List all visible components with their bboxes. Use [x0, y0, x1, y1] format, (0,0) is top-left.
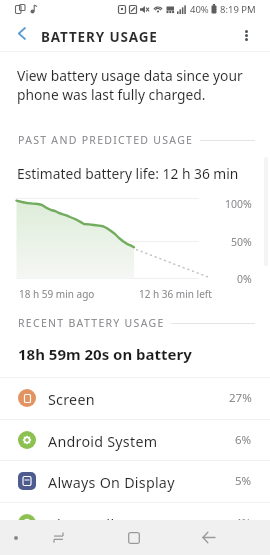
- staticText: 50%: [231, 235, 252, 249]
- staticText: 8:19 PM: [220, 3, 256, 16]
- staticText: 4%: [235, 515, 252, 531]
- button[interactable]: Android System: [0, 419, 270, 461]
- staticText: 27%: [229, 390, 252, 406]
- button[interactable]: Always On Display: [0, 460, 270, 502]
- staticText: 40%: [190, 3, 209, 16]
- staticText: RECENT BATTERY USAGE: [18, 316, 165, 330]
- button[interactable]: Recent apps: [40, 520, 77, 555]
- staticText: 12 h 36 min left: [139, 287, 212, 301]
- staticText: Android System: [48, 432, 158, 451]
- staticText: 18 h 59 min ago: [19, 287, 95, 301]
- staticText: BATTERY USAGE: [41, 28, 158, 46]
- button[interactable]: Phone Idle: [0, 502, 270, 544]
- button[interactable]: Navigate up: [6, 18, 36, 48]
- button[interactable]: Screen: [0, 377, 270, 419]
- button[interactable]: Back: [190, 520, 227, 555]
- staticText: Screen: [48, 390, 95, 409]
- staticText: 0%: [237, 272, 252, 286]
- staticText: View battery usage data since your phone…: [17, 66, 243, 104]
- staticText: PAST AND PREDICTED USAGE: [18, 133, 194, 147]
- staticText: Always On Display: [48, 473, 175, 492]
- staticText: 18h 59m 20s on battery: [18, 344, 192, 364]
- staticText: 6%: [235, 432, 252, 448]
- staticText: Phone Idle: [48, 515, 123, 534]
- button[interactable]: More options: [231, 18, 261, 52]
- button[interactable]: Home: [115, 520, 152, 555]
- staticText: Estimated battery life: 12 h 36 min: [17, 164, 239, 183]
- staticText: 100%: [225, 197, 252, 211]
- staticText: 5%: [235, 473, 252, 489]
